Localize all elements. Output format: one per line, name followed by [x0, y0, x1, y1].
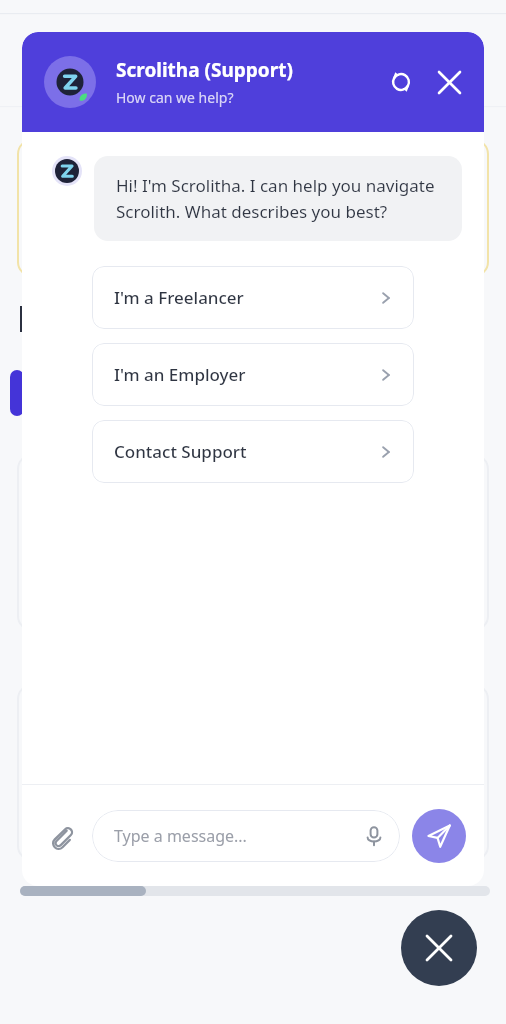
staticText: Type a message...: [114, 825, 364, 847]
button[interactable]: Close chat widget: [401, 910, 477, 986]
button[interactable]: Close chat: [428, 61, 470, 103]
button[interactable]: Attach file: [40, 815, 82, 857]
staticText: Contact Support: [114, 440, 378, 463]
button[interactable]: I'm a Freelancer: [92, 266, 414, 329]
button[interactable]: I'm an Employer: [92, 343, 414, 406]
button[interactable]: Type a message...: [92, 810, 400, 862]
staticText: How can we help?: [116, 88, 234, 107]
staticText: I'm a Freelancer: [114, 286, 378, 309]
staticText: I'm an Employer: [114, 363, 378, 386]
button[interactable]: Refresh conversation: [380, 61, 422, 103]
staticText: Scrolitha (Support): [116, 57, 293, 83]
button[interactable]: Send message: [412, 809, 466, 863]
staticText: Hi! I'm Scrolitha. I can help you naviga…: [116, 174, 440, 223]
button[interactable]: Contact Support: [92, 420, 414, 483]
